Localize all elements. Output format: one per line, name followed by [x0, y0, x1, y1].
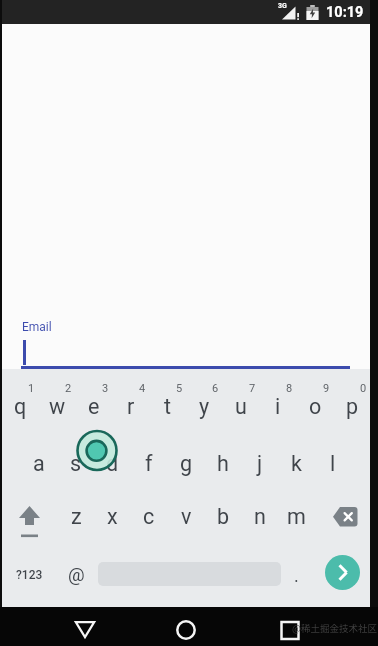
button[interactable]: g: [168, 438, 204, 488]
staticText: d: [106, 451, 119, 476]
staticText: 7: [249, 382, 256, 395]
button[interactable]: [274, 611, 306, 643]
staticText: 1: [28, 382, 35, 395]
staticText: n: [254, 504, 266, 529]
staticText: 3: [102, 382, 109, 395]
staticText: u: [235, 394, 247, 419]
button[interactable]: [325, 555, 360, 590]
button[interactable]: [326, 498, 366, 536]
button[interactable]: k: [278, 438, 314, 488]
staticText: 9: [323, 382, 330, 395]
staticText: z: [71, 504, 82, 529]
button[interactable]: d: [94, 438, 130, 488]
button[interactable]: [170, 611, 202, 643]
staticText: b: [217, 504, 230, 529]
staticText: w: [49, 394, 66, 419]
staticText: ?123: [16, 568, 43, 582]
staticText: a: [33, 451, 45, 476]
staticText: l: [330, 451, 336, 476]
staticText: c: [143, 504, 155, 529]
staticText: 4: [139, 382, 146, 395]
staticText: m: [287, 504, 306, 529]
button[interactable]: c: [131, 491, 167, 541]
button[interactable]: ?123: [10, 560, 48, 590]
staticText: 3G: [278, 2, 287, 10]
staticText: r: [127, 394, 135, 419]
button[interactable]: v: [168, 491, 204, 541]
staticText: y: [199, 394, 210, 419]
staticText: g: [180, 451, 193, 476]
button[interactable]: p: [334, 381, 370, 431]
staticText: i: [275, 394, 281, 419]
staticText: 10:19: [326, 4, 364, 21]
staticText: k: [291, 451, 302, 476]
button[interactable]: y: [186, 381, 222, 431]
button[interactable]: o: [297, 381, 333, 431]
button[interactable]: .: [278, 557, 314, 593]
button[interactable]: s: [58, 438, 94, 488]
button[interactable]: t: [150, 381, 186, 431]
button[interactable]: l: [315, 438, 351, 488]
button[interactable]: a: [21, 438, 57, 488]
staticText: @: [68, 564, 85, 586]
staticText: s: [70, 451, 82, 476]
staticText: e: [88, 394, 100, 419]
button[interactable]: z: [58, 491, 94, 541]
staticText: j: [257, 451, 263, 476]
button[interactable]: [69, 611, 101, 643]
button[interactable]: b: [205, 491, 241, 541]
button[interactable]: f: [131, 438, 167, 488]
staticText: 2: [65, 382, 72, 395]
staticText: v: [181, 504, 192, 529]
button[interactable]: n: [242, 491, 278, 541]
button[interactable]: @: [58, 557, 94, 593]
button[interactable]: r: [113, 381, 149, 431]
staticText: 8: [286, 382, 293, 395]
staticText: h: [217, 451, 229, 476]
staticText: t: [164, 394, 172, 419]
button[interactable]: x: [94, 491, 130, 541]
button[interactable]: j: [242, 438, 278, 488]
button[interactable]: w: [39, 381, 75, 431]
staticText: x: [107, 504, 118, 529]
staticText: 5: [176, 382, 183, 395]
button[interactable]: Email: [21, 314, 350, 369]
staticText: @稀土掘金技术社区: [292, 621, 377, 635]
button[interactable]: i: [260, 381, 296, 431]
button[interactable]: q: [2, 381, 38, 431]
staticText: q: [14, 394, 27, 419]
staticText: f: [145, 451, 153, 476]
button[interactable]: [8, 496, 54, 542]
staticText: 6: [212, 382, 219, 395]
staticText: o: [309, 394, 322, 419]
button[interactable]: e: [76, 381, 112, 431]
staticText: p: [346, 394, 359, 419]
button[interactable]: m: [278, 491, 314, 541]
staticText: 0: [360, 382, 367, 395]
button[interactable]: h: [205, 438, 241, 488]
button[interactable]: u: [223, 381, 259, 431]
staticText: .: [294, 565, 299, 586]
staticText: Email: [22, 320, 52, 334]
